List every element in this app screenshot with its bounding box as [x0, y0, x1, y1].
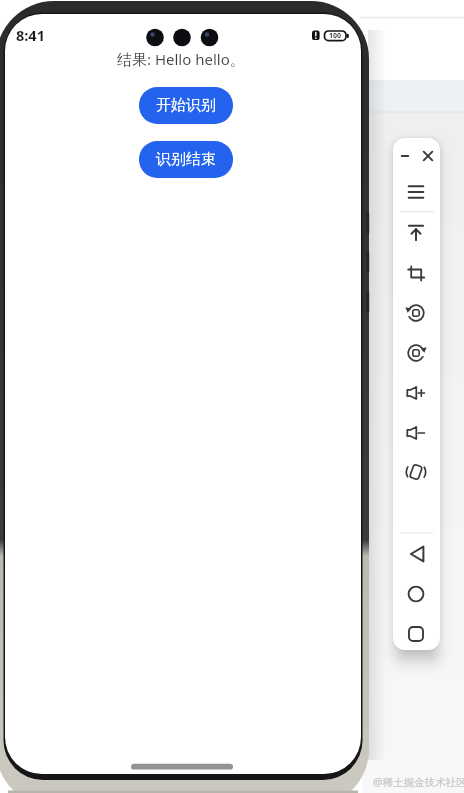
button[interactable]: 识别结束 — [139, 141, 233, 178]
button[interactable] — [392, 143, 418, 169]
button[interactable] — [398, 174, 434, 210]
staticText: @稀土掘金技术社区 — [373, 775, 464, 789]
button[interactable] — [398, 255, 434, 291]
button[interactable] — [398, 295, 434, 331]
staticText: 开始识别 — [156, 96, 216, 115]
button[interactable] — [415, 143, 441, 169]
button[interactable] — [398, 335, 434, 371]
staticText: 100 — [329, 31, 342, 41]
button[interactable] — [398, 215, 434, 251]
button[interactable] — [398, 576, 434, 612]
staticText: 8:41 — [16, 25, 45, 45]
button[interactable] — [398, 616, 434, 652]
button[interactable] — [398, 375, 434, 411]
staticText: 结果: Hello hello。 — [117, 49, 245, 69]
button[interactable]: 开始识别 — [139, 87, 233, 124]
button[interactable] — [398, 454, 434, 490]
button[interactable] — [399, 536, 435, 572]
staticText: 识别结束 — [156, 150, 216, 169]
button[interactable] — [398, 415, 434, 451]
